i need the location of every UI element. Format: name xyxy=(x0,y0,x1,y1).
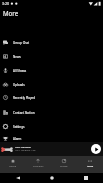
button[interactable]: 107.1 The Bone xyxy=(0,142,103,156)
staticText: Settings xyxy=(13,125,25,129)
staticText: Home xyxy=(9,164,17,167)
button[interactable]: Contact Station xyxy=(0,106,103,119)
staticText: Alarm xyxy=(13,137,22,141)
button[interactable]: All Shows xyxy=(0,64,103,77)
staticText: All Shows xyxy=(13,69,27,73)
button[interactable]: Back xyxy=(0,173,35,183)
button[interactable]: Home xyxy=(0,156,25,173)
button[interactable]: Podcasts xyxy=(25,156,51,173)
button[interactable]: News xyxy=(0,50,103,63)
staticText: More xyxy=(87,164,94,167)
staticText: 107.1 The Bone xyxy=(15,146,31,149)
button[interactable]: Settings xyxy=(0,120,103,133)
staticText: 107.1 The Bone - Live xyxy=(15,149,36,152)
button[interactable]: Group Chat xyxy=(0,36,103,49)
button[interactable]: Recents xyxy=(69,173,103,183)
button[interactable]: Home xyxy=(35,173,69,183)
staticText: 3:20 xyxy=(2,1,10,6)
staticText: Uploads xyxy=(13,83,25,87)
staticText: Recently Played xyxy=(13,96,36,100)
staticText: Contact Station xyxy=(13,111,35,115)
staticText: Shows xyxy=(60,164,68,167)
button[interactable]: Alarm xyxy=(0,132,103,145)
button[interactable]: More xyxy=(77,156,103,173)
staticText: Podcasts xyxy=(33,164,44,167)
staticText: News xyxy=(13,55,21,59)
staticText: More xyxy=(3,9,19,17)
button[interactable]: Uploads xyxy=(0,78,103,91)
button[interactable]: Recently Played xyxy=(0,91,103,104)
button[interactable]: Play xyxy=(91,144,101,154)
staticText: Group Chat xyxy=(13,41,30,45)
button[interactable]: Shows xyxy=(51,156,77,173)
